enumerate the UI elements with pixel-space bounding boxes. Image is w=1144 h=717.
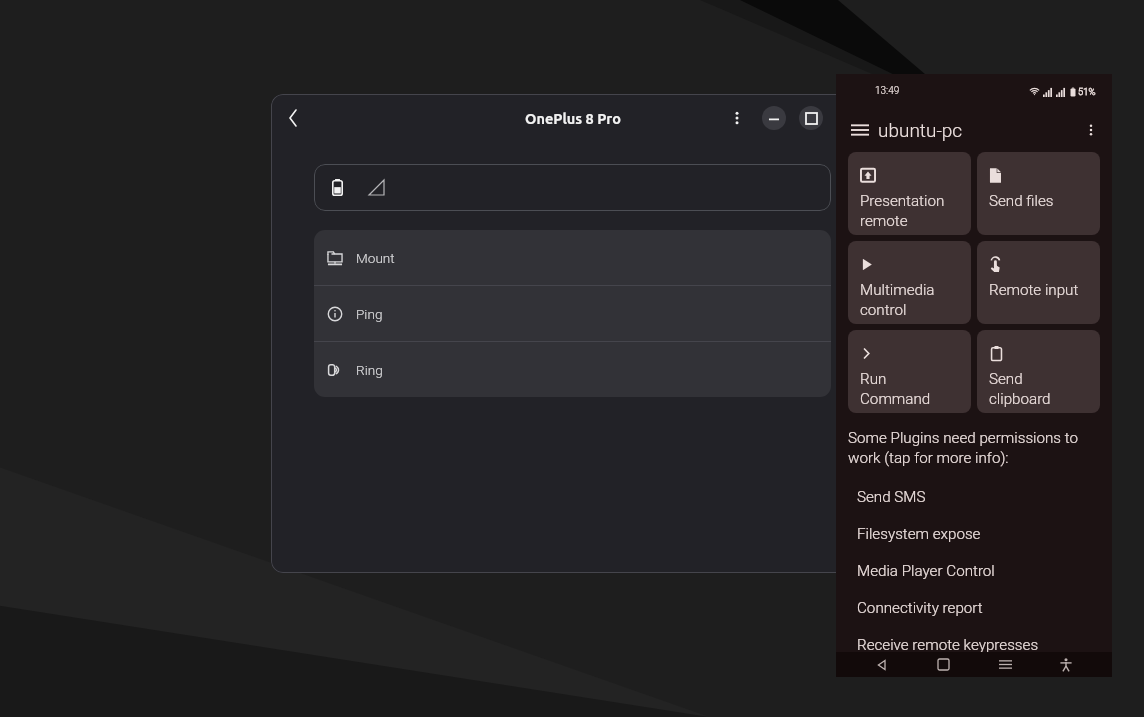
staticText: OnePlus 8 Pro — [525, 110, 621, 126]
staticText: Ping — [356, 306, 383, 322]
button[interactable]: Send files — [977, 152, 1100, 235]
staticText: 51% — [1078, 86, 1096, 97]
button[interactable]: More options — [1076, 115, 1106, 145]
button[interactable]: Connectivity report — [836, 589, 1112, 626]
button[interactable]: Home — [928, 652, 958, 677]
staticText: Run Command — [860, 370, 931, 408]
button[interactable]: Remote input — [977, 241, 1100, 324]
button[interactable]: Menu — [844, 114, 876, 146]
button[interactable]: Multimedia control — [848, 241, 971, 324]
button[interactable] — [314, 164, 831, 211]
staticText: Filesystem expose — [857, 525, 981, 543]
button[interactable]: Ping — [314, 286, 831, 341]
button[interactable]: Back — [277, 102, 309, 134]
button[interactable]: Ring — [314, 342, 831, 397]
button[interactable]: Media Player Control — [836, 552, 1112, 589]
button[interactable]: Run Command — [848, 330, 971, 413]
button[interactable]: Send clipboard — [977, 330, 1100, 413]
button[interactable]: Receive remote keypresses — [836, 626, 1112, 663]
button[interactable]: Minimize — [762, 106, 786, 130]
button[interactable]: Back — [867, 652, 897, 677]
staticText: ubuntu-pc — [878, 119, 963, 141]
staticText: 13:49 — [875, 85, 900, 97]
staticText: Ring — [356, 362, 383, 378]
staticText: Presentation remote — [860, 192, 945, 230]
button[interactable]: More options — [723, 104, 751, 132]
button[interactable]: Send SMS — [836, 478, 1112, 515]
staticText: Media Player Control — [857, 562, 995, 580]
button[interactable]: Mount — [314, 230, 831, 285]
button[interactable]: Recents — [990, 652, 1020, 677]
staticText: Send SMS — [857, 488, 926, 506]
staticText: Multimedia control — [860, 281, 935, 319]
staticText: Receive remote keypresses — [857, 636, 1039, 654]
button[interactable]: Presentation remote — [848, 152, 971, 235]
staticText: Some Plugins need permissions to work (t… — [848, 429, 1098, 467]
staticText: Send files — [989, 192, 1054, 210]
staticText: Mount — [356, 250, 395, 266]
staticText: Connectivity report — [857, 599, 983, 617]
button[interactable]: Accessibility — [1051, 652, 1081, 677]
staticText: Send clipboard — [989, 370, 1051, 408]
button[interactable]: Maximize — [799, 106, 823, 130]
button[interactable]: Filesystem expose — [836, 515, 1112, 552]
staticText: Remote input — [989, 281, 1079, 299]
